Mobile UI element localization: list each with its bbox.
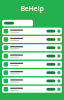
button[interactable] — [2, 77, 62, 84]
button[interactable] — [2, 44, 62, 51]
button[interactable] — [2, 53, 62, 60]
staticText: BeHelp — [20, 4, 43, 13]
button[interactable] — [2, 61, 62, 68]
button[interactable] — [2, 28, 62, 35]
button[interactable] — [2, 86, 62, 93]
button[interactable] — [2, 69, 62, 76]
button[interactable] — [2, 20, 33, 26]
button[interactable] — [2, 36, 62, 43]
